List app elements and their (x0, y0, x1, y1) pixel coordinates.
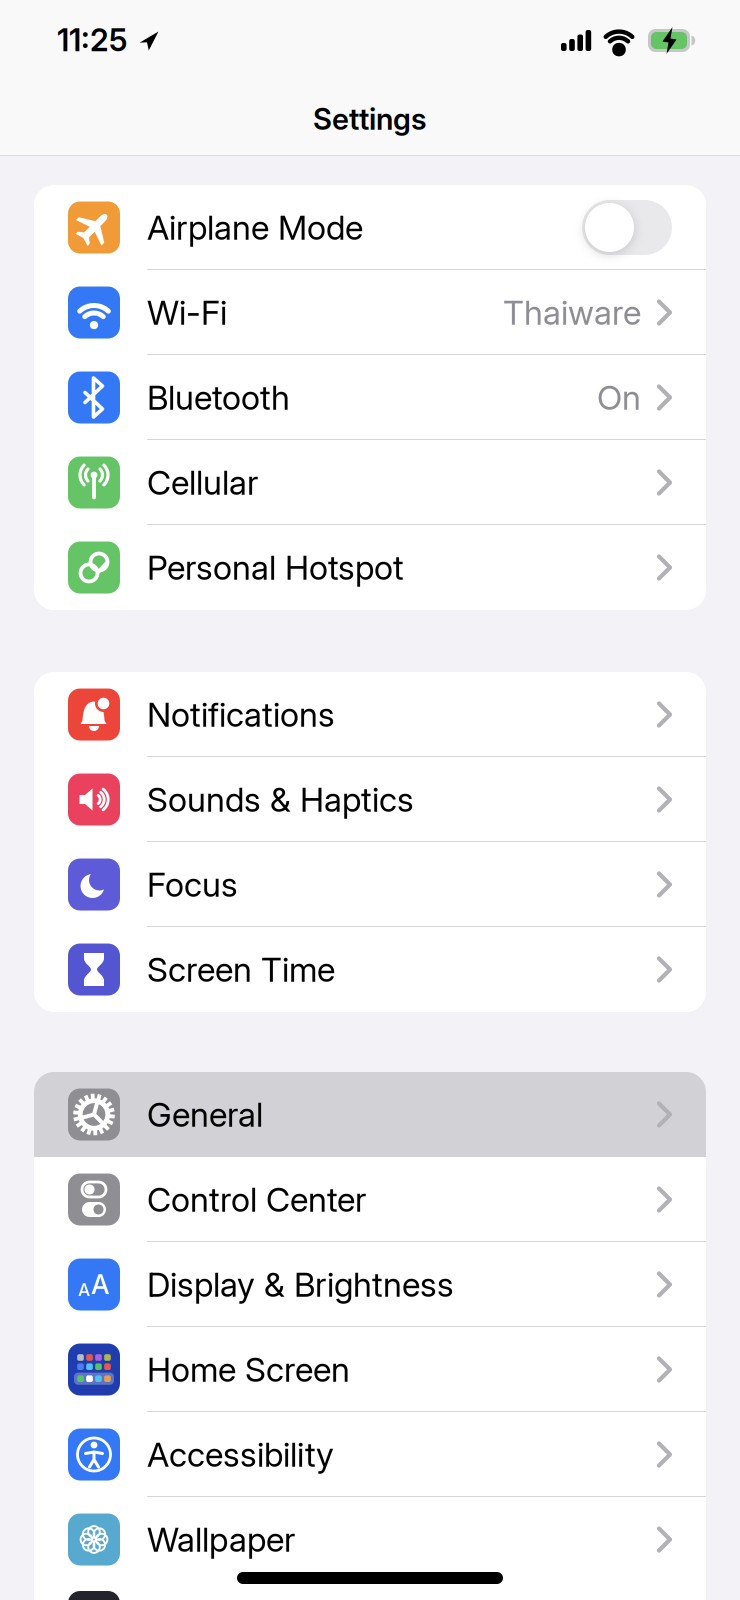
button[interactable]: A (34, 1242, 706, 1327)
staticText: Settings (313, 102, 427, 136)
button[interactable]: Cellular (34, 440, 706, 525)
staticText: A (78, 1280, 90, 1300)
staticText: Thaiware (503, 293, 641, 332)
button[interactable]: Accessibility (34, 1412, 706, 1497)
staticText: Cellular (147, 463, 258, 502)
button[interactable]: Control Center (34, 1157, 706, 1242)
button[interactable]: General (34, 1072, 706, 1157)
button[interactable]: Focus (34, 842, 706, 927)
staticText: Accessibility (147, 1435, 334, 1474)
button[interactable]: Personal Hotspot (34, 525, 706, 610)
staticText: On (597, 378, 641, 417)
button[interactable]: Sounds & Haptics (34, 757, 706, 842)
button[interactable]: Airplane Mode (34, 185, 706, 270)
staticText: A (91, 1269, 110, 1300)
staticText: Screen Time (147, 950, 335, 989)
staticText: Wallpaper (147, 1520, 295, 1559)
button[interactable]: Wallpaper (34, 1497, 706, 1582)
button[interactable]: Notifications (34, 672, 706, 757)
staticText: 11:25 (57, 22, 127, 58)
staticText: Focus (147, 865, 238, 904)
staticText: Airplane Mode (147, 208, 363, 247)
button[interactable]: Bluetooth (34, 355, 706, 440)
staticText: General (147, 1095, 263, 1134)
button[interactable]: Screen Time (34, 927, 706, 1012)
staticText: Notifications (147, 695, 335, 734)
staticText: Display & Brightness (147, 1265, 454, 1304)
button[interactable]: Home Screen (34, 1327, 706, 1412)
staticText: Sounds & Haptics (147, 780, 414, 819)
button[interactable]: Wi-Fi (34, 270, 706, 355)
staticText: Home Screen (147, 1350, 350, 1389)
staticText: Control Center (147, 1180, 366, 1219)
staticText: Wi-Fi (147, 293, 227, 332)
staticText: Personal Hotspot (147, 548, 404, 587)
staticText: Bluetooth (147, 378, 290, 417)
